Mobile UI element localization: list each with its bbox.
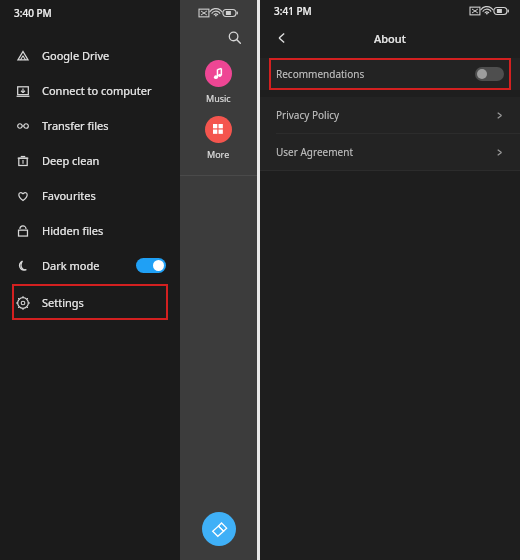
staticText: Connect to computer bbox=[42, 83, 152, 98]
button[interactable]: More bbox=[205, 116, 232, 160]
staticText: Deep clean bbox=[42, 153, 100, 168]
staticText: More bbox=[207, 148, 230, 160]
button[interactable]: Transfer files bbox=[0, 108, 180, 143]
button[interactable]: Favourites bbox=[0, 178, 180, 213]
button[interactable]: Privacy Policy bbox=[260, 97, 520, 133]
staticText: Google Drive bbox=[42, 48, 110, 63]
staticText: Dark mode bbox=[42, 258, 100, 273]
button[interactable]: Recommendations bbox=[269, 58, 511, 90]
button[interactable]: Google Drive bbox=[0, 38, 180, 73]
button[interactable]: Settings bbox=[12, 284, 168, 320]
button[interactable]: Music bbox=[205, 60, 232, 104]
staticText: Hidden files bbox=[42, 223, 104, 238]
button[interactable]: Connect to computer bbox=[0, 73, 180, 108]
staticText: User Agreement bbox=[276, 145, 353, 159]
button[interactable]: Search bbox=[223, 26, 245, 48]
button[interactable]: Dark mode bbox=[0, 248, 180, 283]
staticText: Privacy Policy bbox=[276, 108, 340, 122]
staticText: Favourites bbox=[42, 188, 96, 203]
staticText: 3:41 PM bbox=[274, 4, 312, 18]
staticText: Transfer files bbox=[42, 118, 109, 133]
staticText: Recommendations bbox=[276, 67, 365, 81]
button[interactable]: Recommendations toggle bbox=[475, 67, 504, 81]
staticText: Music bbox=[206, 92, 231, 104]
staticText: Settings bbox=[42, 295, 84, 310]
button[interactable]: User Agreement bbox=[260, 134, 520, 170]
button[interactable]: Dark mode toggle bbox=[136, 258, 166, 273]
staticText: 3:40 PM bbox=[14, 6, 52, 20]
button[interactable]: Hidden files bbox=[0, 213, 180, 248]
button[interactable]: Back bbox=[270, 26, 294, 50]
button[interactable]: Clean bbox=[202, 512, 236, 546]
button[interactable]: Deep clean bbox=[0, 143, 180, 178]
staticText: About bbox=[374, 31, 406, 46]
